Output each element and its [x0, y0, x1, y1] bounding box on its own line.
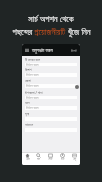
- staticText: আয়তন: [25, 123, 33, 127]
- staticText: নির্বাচন করুন: [26, 96, 39, 99]
- button[interactable]: Options: [75, 85, 79, 89]
- staticText: মেনু: [73, 158, 77, 161]
- other: Menu: [25, 48, 29, 52]
- button[interactable]: উপজেলা / থানা: [22, 89, 80, 100]
- staticText: নির্বাচন করুন: [26, 106, 39, 110]
- button[interactable]: সার্চ: [33, 153, 44, 165]
- button[interactable]: ধরন: [22, 100, 80, 111]
- staticText: অনুসন্ধান করুন: [32, 47, 53, 53]
- staticText: সার্চ অপশন থেকে: [28, 13, 74, 25]
- staticText: ধরন: [25, 101, 30, 105]
- button[interactable]: আয়তন: [22, 122, 80, 133]
- staticText: নির্বাচন করুন: [26, 84, 39, 88]
- button[interactable]: টি ক্রয়ের ধরন: [22, 56, 80, 67]
- button[interactable]: মূল্য: [22, 111, 80, 122]
- staticText: চ্যাট: [61, 158, 65, 161]
- staticText: বিভাগ: [25, 68, 32, 72]
- button[interactable]: পোস্ট: [44, 153, 56, 165]
- staticText: পোস্ট: [48, 158, 53, 161]
- button[interactable]: বিভাগ: [22, 67, 80, 78]
- staticText: নির্বাচন করুন: [26, 73, 39, 77]
- staticText: উপজেলা / থানা: [25, 90, 43, 95]
- staticText: হোম: [26, 158, 30, 161]
- staticText: সার্চ: [37, 158, 40, 161]
- staticText: নির্বাচন করুন: [26, 63, 39, 66]
- staticText: মূল্য: [25, 112, 29, 116]
- button[interactable]: মেনু: [68, 153, 80, 165]
- staticText: জেলা: [25, 79, 31, 83]
- staticText: পছন্দের প্রয়োজনীয়টি খুঁজে নিন: [12, 26, 91, 38]
- staticText: রিসেট: [71, 49, 77, 52]
- button[interactable]: জেলা: [22, 78, 80, 89]
- staticText: টি ক্রয়ের ধরন: [25, 57, 41, 62]
- button[interactable]: হোম: [22, 153, 33, 165]
- button[interactable]: চ্যাট: [56, 153, 68, 165]
